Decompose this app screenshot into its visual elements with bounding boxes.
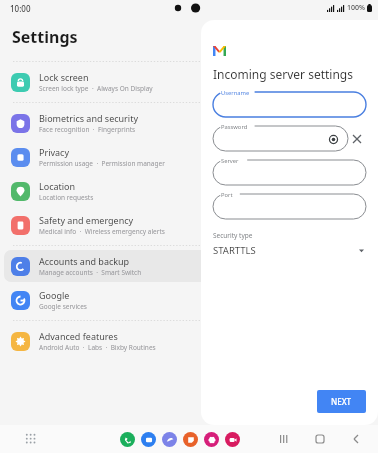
button[interactable]: notes bbox=[183, 432, 198, 447]
button[interactable]: Port bbox=[213, 194, 366, 219]
button[interactable]: phone bbox=[120, 432, 135, 447]
button[interactable]: NEXT bbox=[317, 390, 366, 413]
staticText: Biometrics and security bbox=[39, 112, 139, 124]
button[interactable]: Password bbox=[213, 126, 348, 151]
staticText: Screen lock type · Always On Display bbox=[39, 84, 153, 93]
button[interactable]: Lock screen bbox=[4, 66, 374, 98]
staticText: 100% bbox=[347, 3, 365, 13]
staticText: Privacy bbox=[39, 146, 70, 158]
staticText: Safety and emergency bbox=[39, 214, 134, 226]
button[interactable]: msg bbox=[141, 432, 156, 447]
staticText: Accounts and backup bbox=[39, 255, 130, 267]
button[interactable]: Recents bbox=[276, 431, 292, 447]
staticText: Port bbox=[221, 191, 233, 199]
staticText: Advanced features bbox=[39, 330, 118, 342]
button[interactable]: Safety and emergency bbox=[4, 209, 374, 241]
button[interactable]: Biometrics and security bbox=[4, 107, 374, 139]
staticText: Medical info · Wireless emergency alerts bbox=[39, 227, 165, 236]
button[interactable]: Home bbox=[312, 431, 328, 447]
staticText: Location requests bbox=[39, 193, 94, 202]
button[interactable]: Privacy bbox=[4, 141, 374, 173]
staticText: Google services bbox=[39, 302, 87, 311]
staticText: Google bbox=[39, 289, 70, 301]
staticText: Incoming server settings bbox=[213, 66, 353, 82]
staticText: Lock screen bbox=[39, 71, 89, 83]
button[interactable]: Back bbox=[348, 431, 364, 447]
button[interactable]: Username bbox=[213, 92, 366, 117]
staticText: NEXT bbox=[331, 396, 352, 407]
button[interactable]: Google bbox=[4, 284, 374, 316]
button[interactable]: Advanced features bbox=[4, 325, 374, 357]
staticText: 10:00 bbox=[10, 3, 31, 14]
button[interactable]: Clear bbox=[348, 130, 366, 148]
staticText: Password bbox=[221, 123, 248, 131]
staticText: STARTTLS bbox=[213, 244, 256, 257]
button[interactable]: Location bbox=[4, 175, 374, 207]
button[interactable]: Show password bbox=[327, 133, 339, 145]
button[interactable]: STARTTLS bbox=[213, 244, 366, 257]
button[interactable]: flower bbox=[204, 432, 219, 447]
staticText: Location bbox=[39, 180, 76, 192]
staticText: Security type bbox=[213, 231, 253, 240]
button[interactable]: Apps bbox=[22, 430, 40, 448]
staticText: Permission usage · Permission manager bbox=[39, 159, 165, 168]
staticText: Face recognition · Fingerprints bbox=[39, 125, 136, 134]
staticText: Android Auto · Labs · Bixby Routines bbox=[39, 343, 156, 352]
staticText: Username bbox=[221, 89, 250, 97]
button[interactable]: camera bbox=[225, 432, 240, 447]
staticText: Settings bbox=[12, 26, 78, 48]
staticText: Server bbox=[221, 157, 239, 165]
button[interactable]: Accounts and backup bbox=[4, 250, 374, 282]
button[interactable]: internet bbox=[162, 432, 177, 447]
button[interactable]: Server bbox=[213, 160, 366, 185]
staticText: Manage accounts · Smart Switch bbox=[39, 268, 142, 277]
